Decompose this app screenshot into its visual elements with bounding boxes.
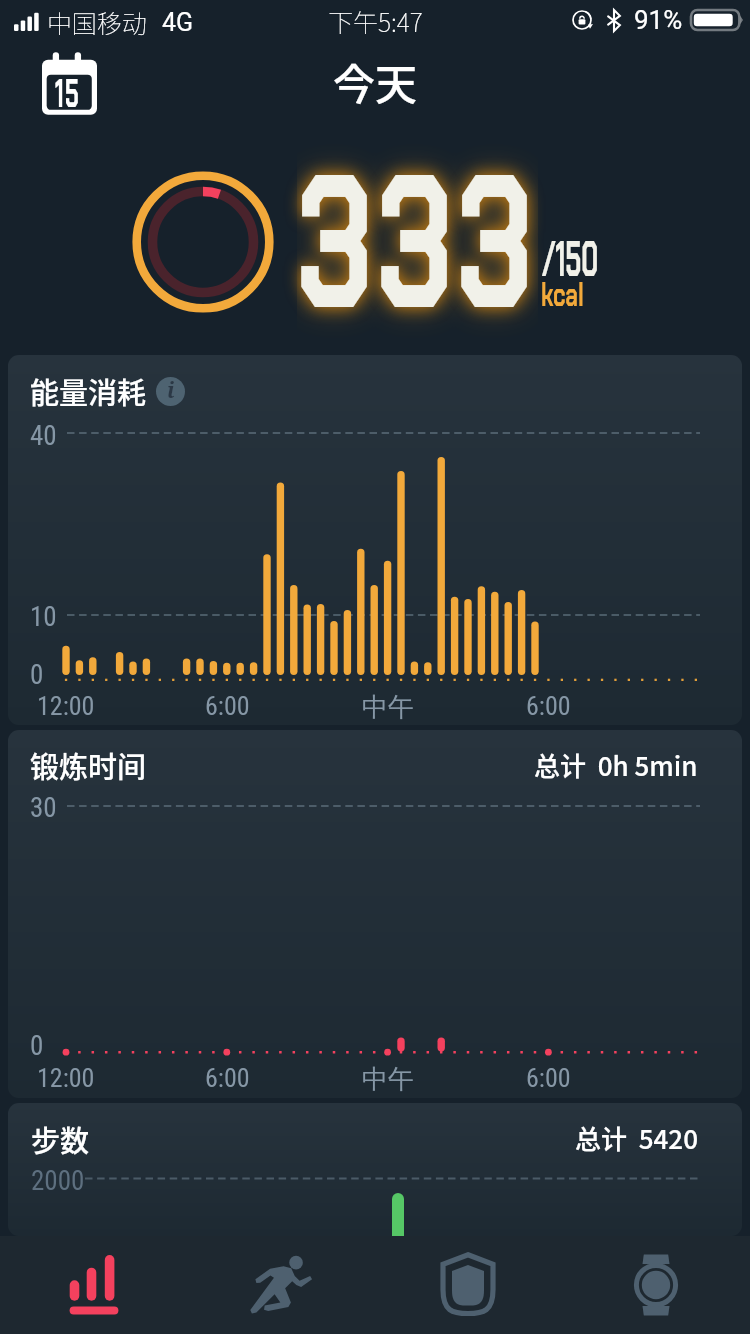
button[interactable]: Shield <box>374 1236 562 1334</box>
staticText: 锻炼时间 <box>30 744 147 786</box>
staticText: 中午 <box>362 691 414 724</box>
staticText: 15 <box>55 68 80 119</box>
button[interactable]: Statistics <box>0 1236 187 1334</box>
staticText: 6:00 <box>526 1063 571 1093</box>
button[interactable]: Info <box>156 377 185 406</box>
staticText: 总计 5420 <box>575 1119 698 1157</box>
staticText: 步数 <box>31 1118 90 1160</box>
staticText: 6:00 <box>205 691 250 721</box>
staticText: 4G <box>162 8 194 37</box>
staticText: 30 <box>30 792 57 824</box>
staticText: 0 <box>30 659 44 691</box>
staticText: 40 <box>30 420 57 452</box>
staticText: 中午 <box>362 1063 414 1096</box>
staticText: 10 <box>30 601 57 633</box>
staticText: kcal <box>541 273 584 316</box>
staticText: i <box>167 377 175 405</box>
staticText: 总计 0h 5min <box>534 746 698 784</box>
staticText: 下午5:47 <box>328 3 423 39</box>
button[interactable]: Calendar <box>35 52 97 120</box>
staticText: /150 <box>542 226 599 291</box>
staticText: 333 <box>297 120 538 366</box>
staticText: 6:00 <box>205 1063 250 1093</box>
staticText: 333 <box>297 120 538 366</box>
staticText: 今天 <box>333 51 418 112</box>
staticText: 12:00 <box>37 1063 95 1093</box>
staticText: 能量消耗 <box>30 370 147 412</box>
button[interactable]: 锻炼时间 <box>8 730 742 1098</box>
staticText: 2000 <box>31 1165 85 1197</box>
button[interactable]: Workout <box>187 1236 374 1334</box>
button[interactable]: 步数 <box>8 1103 742 1236</box>
staticText: 0 <box>30 1030 44 1062</box>
staticText: 中国移动 <box>47 4 148 40</box>
staticText: 91% <box>634 5 683 35</box>
staticText: 6:00 <box>526 691 571 721</box>
staticText: 12:00 <box>37 691 95 721</box>
button[interactable]: 能量消耗 <box>8 355 742 725</box>
button[interactable]: Watch <box>562 1236 750 1334</box>
